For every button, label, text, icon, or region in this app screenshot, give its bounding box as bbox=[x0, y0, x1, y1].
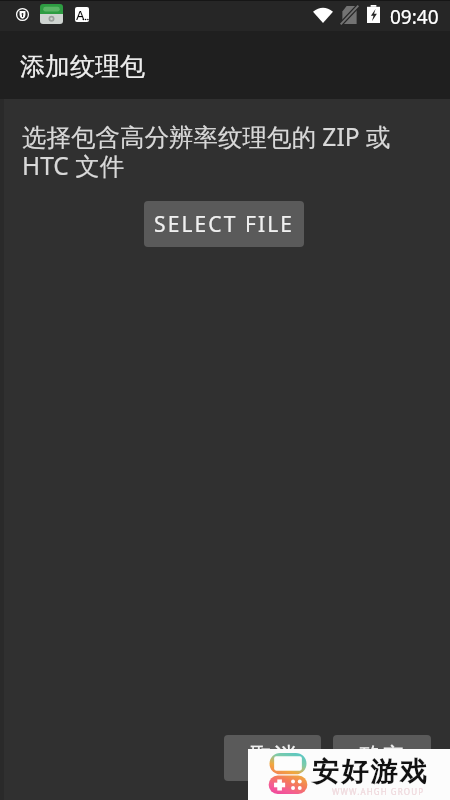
button[interactable]: 确定 bbox=[333, 735, 431, 781]
staticText: 安好游戏 bbox=[312, 755, 429, 789]
staticText: 选择包含高分辨率纹理包的 ZIP 或 HTC 文件 bbox=[22, 120, 391, 182]
staticText: 09:40 bbox=[390, 4, 439, 30]
staticText: SELECT FILE bbox=[154, 210, 295, 239]
button[interactable]: 取消 bbox=[224, 735, 321, 781]
other: Battery charging bbox=[367, 5, 380, 23]
other: Input method bbox=[75, 7, 89, 22]
staticText: WWW.AHGH GROUP bbox=[332, 786, 425, 797]
button[interactable]: SELECT FILE bbox=[144, 201, 304, 247]
staticText: 确定 bbox=[359, 742, 405, 771]
staticText: A bbox=[76, 7, 85, 21]
staticText: 取消 bbox=[250, 742, 296, 771]
staticText: 添加纹理包 bbox=[20, 51, 145, 82]
other: Wi-Fi bbox=[313, 6, 333, 23]
other: Installer bbox=[40, 4, 63, 24]
other: No SIM bbox=[341, 6, 358, 24]
other: Security bbox=[16, 8, 29, 21]
